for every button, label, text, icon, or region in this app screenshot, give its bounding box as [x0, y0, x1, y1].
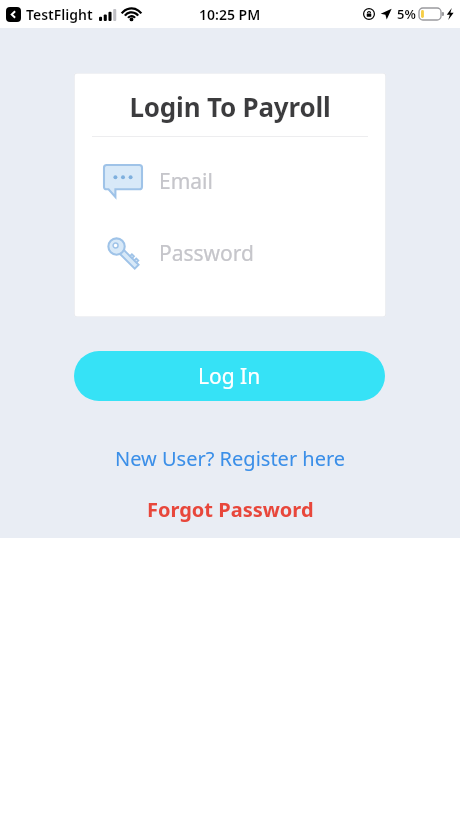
staticText: Log In [198, 362, 261, 391]
staticText: Forgot Password [147, 496, 314, 523]
staticText: 5% [397, 5, 416, 23]
button[interactable]: Password [74, 227, 386, 279]
staticText: 10:25 PM [199, 5, 261, 24]
staticText: TestFlight [26, 5, 93, 24]
button[interactable]: Email [74, 155, 386, 207]
staticText: New User? Register here [115, 445, 346, 472]
staticText: Password [159, 239, 254, 268]
staticText: Email [159, 167, 213, 196]
staticText: Login To Payroll [74, 89, 386, 124]
button[interactable]: New User? Register here [103, 441, 358, 476]
button[interactable]: Forgot Password [135, 492, 326, 527]
button[interactable]: Log In [74, 351, 385, 401]
